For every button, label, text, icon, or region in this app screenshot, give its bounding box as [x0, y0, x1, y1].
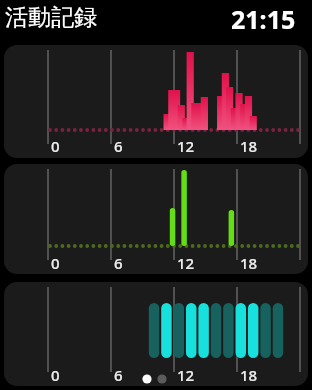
staticText: 6	[114, 365, 123, 385]
staticText: 0	[51, 365, 60, 385]
staticText: 6	[114, 253, 123, 273]
button[interactable]: Stand hours chart	[4, 282, 308, 386]
staticText: 12	[177, 365, 195, 385]
button[interactable]: Move activity chart	[4, 45, 308, 158]
button[interactable]: Exercise chart	[4, 164, 308, 274]
staticText: 18	[240, 253, 258, 273]
staticText: 0	[51, 136, 60, 156]
staticText: 活動記録	[5, 3, 97, 32]
staticText: 0	[51, 253, 60, 273]
staticText: 18	[240, 365, 258, 385]
staticText: 18	[240, 136, 258, 156]
staticText: 21:15	[231, 2, 296, 36]
staticText: 12	[177, 253, 195, 273]
staticText: 6	[114, 136, 123, 156]
staticText: 12	[177, 136, 195, 156]
